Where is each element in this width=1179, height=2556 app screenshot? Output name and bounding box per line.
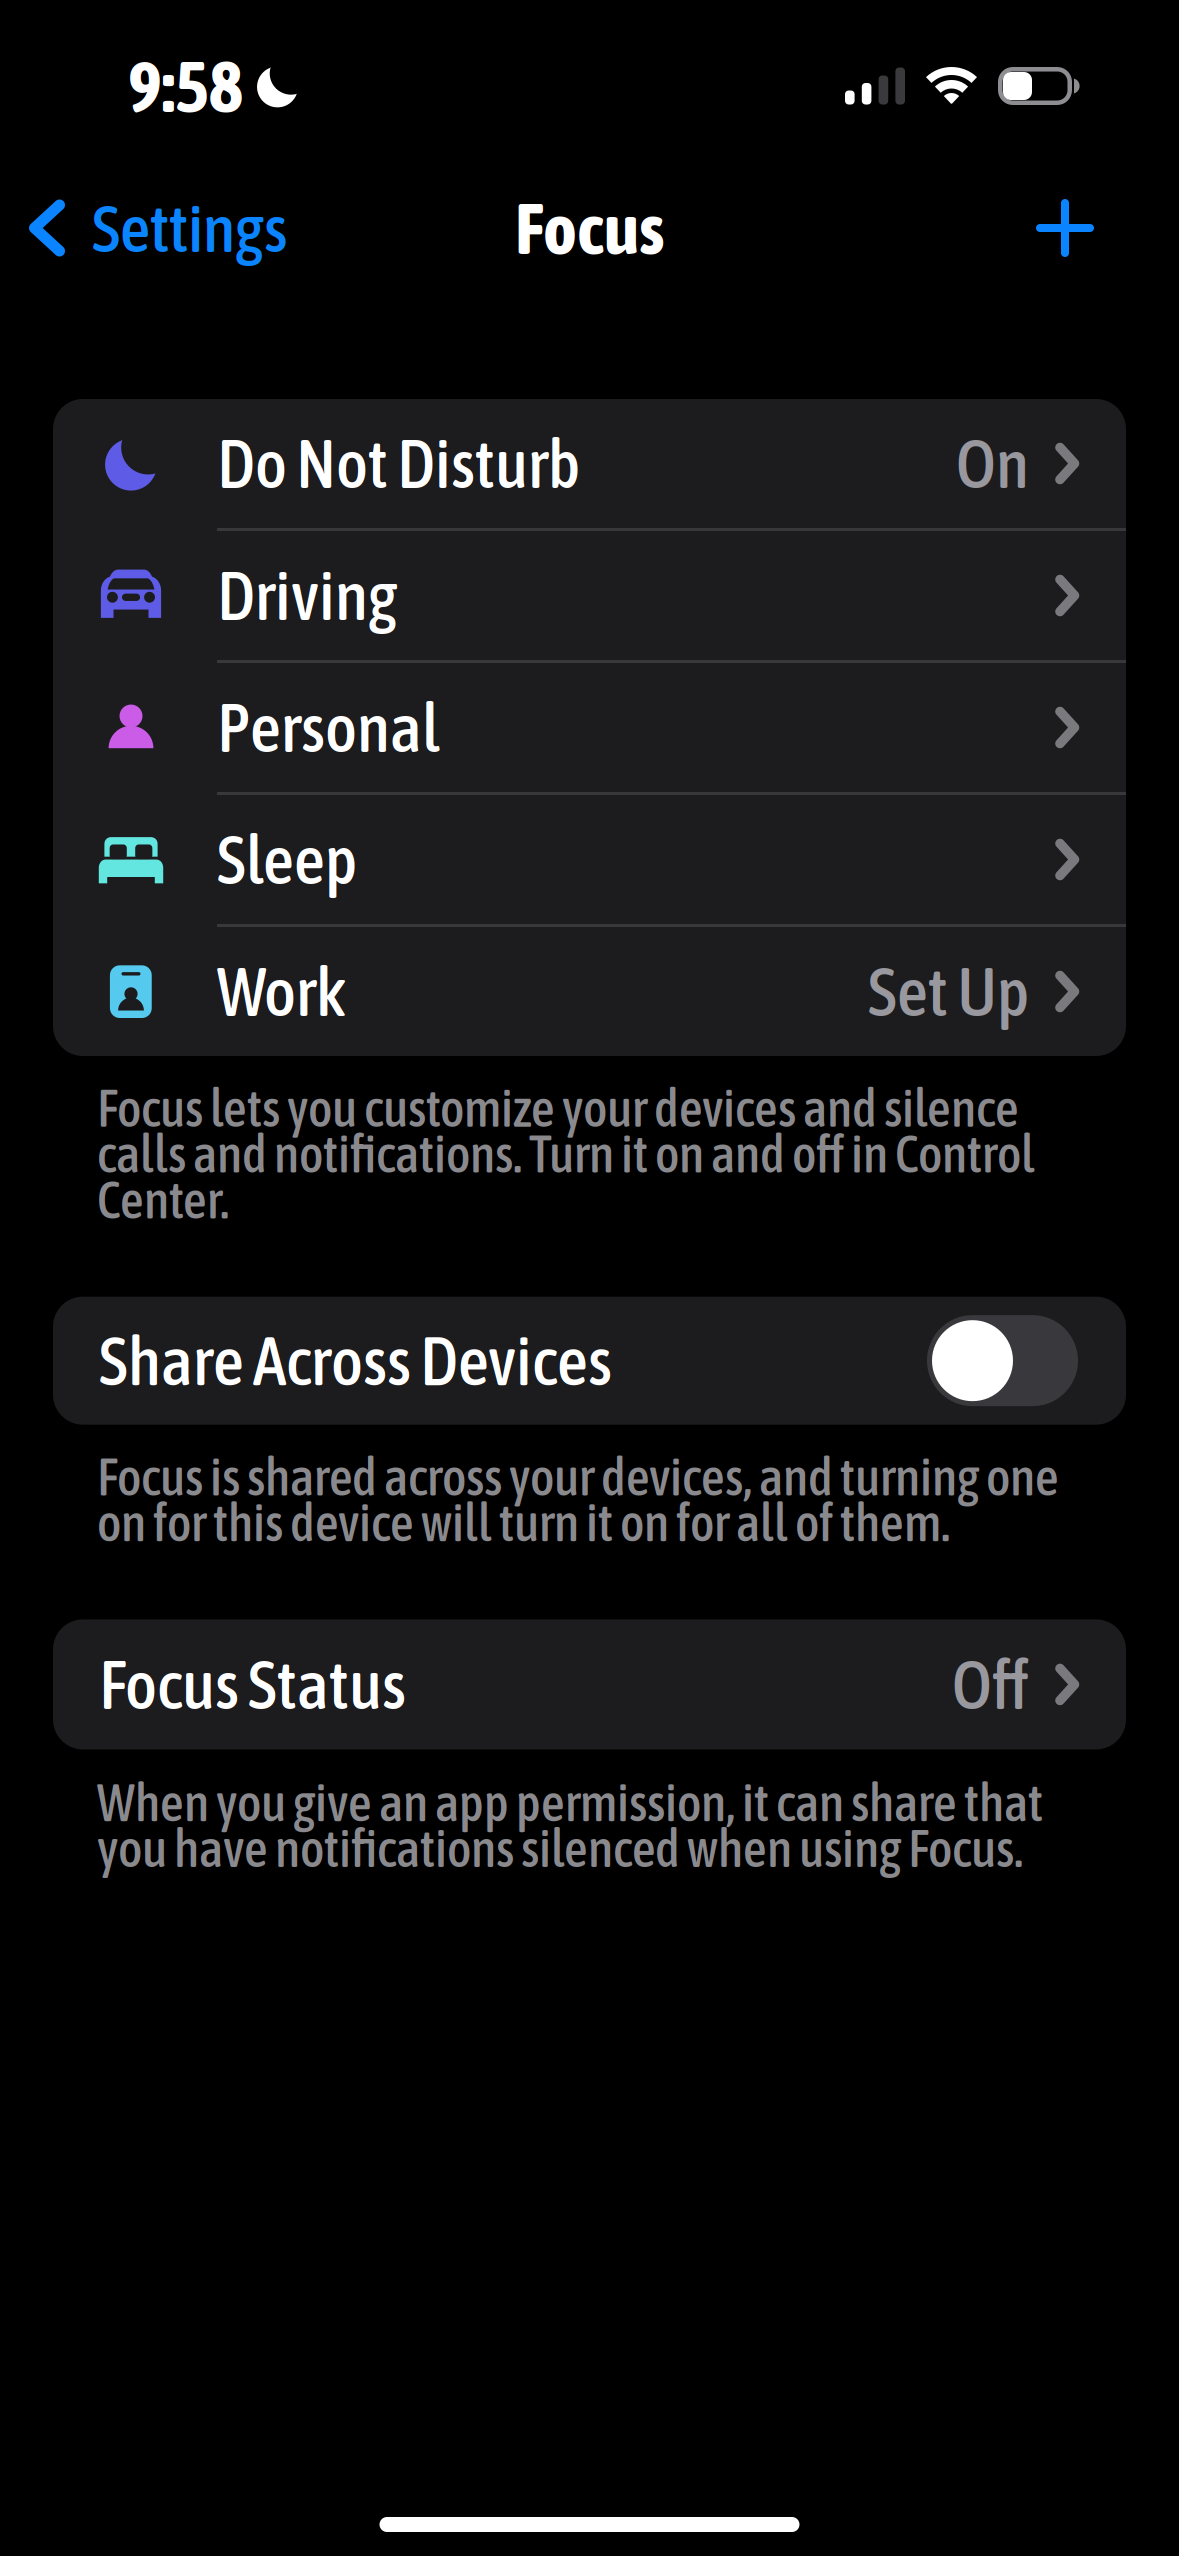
- button[interactable]: Add Focus: [1004, 177, 1126, 279]
- button[interactable]: Sleep: [53, 795, 1126, 924]
- staticText: Off: [952, 1645, 1029, 1723]
- staticText: Work: [217, 952, 346, 1030]
- staticText: Focus is shared across your devices, and…: [97, 1454, 1059, 1545]
- staticText: Driving: [217, 556, 397, 634]
- staticText: Share Across Devices: [99, 1322, 612, 1400]
- staticText: Focus lets you customize your devices an…: [97, 1085, 1035, 1223]
- staticText: When you give an app permission, it can …: [97, 1779, 1043, 1871]
- button[interactable]: Focus Status: [53, 1619, 1126, 1749]
- staticText: Settings: [92, 190, 288, 266]
- button[interactable]: Share Across Devices: [927, 1315, 1078, 1406]
- button[interactable]: Settings: [0, 174, 288, 282]
- button[interactable]: Do Not Disturb: [53, 399, 1126, 528]
- staticText: Sleep: [217, 820, 357, 898]
- button[interactable]: Personal: [53, 663, 1126, 792]
- staticText: Focus Status: [99, 1645, 406, 1723]
- staticText: Set Up: [868, 952, 1029, 1030]
- button[interactable]: Work: [53, 927, 1126, 1056]
- staticText: On: [956, 424, 1029, 502]
- staticText: 9:58: [128, 45, 243, 127]
- button[interactable]: Driving: [53, 531, 1126, 660]
- staticText: Do Not Disturb: [217, 424, 580, 502]
- staticText: Focus: [515, 187, 664, 269]
- staticText: Personal: [217, 688, 440, 766]
